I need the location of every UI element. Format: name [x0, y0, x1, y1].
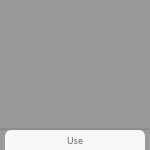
staticText: Use: [67, 134, 83, 146]
button[interactable]: Use: [5, 130, 145, 150]
